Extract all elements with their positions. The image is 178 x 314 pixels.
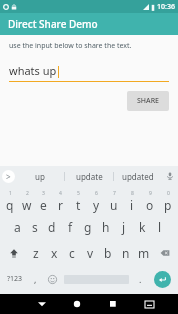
button[interactable]: Space [61, 266, 132, 292]
button[interactable]: k [133, 214, 151, 240]
staticText: q [6, 197, 14, 213]
button[interactable]: l [151, 214, 169, 240]
button[interactable]: b [99, 240, 117, 266]
staticText: k [139, 219, 146, 235]
staticText: s [32, 219, 38, 235]
staticText: h [102, 219, 110, 235]
button[interactable]: Enter [149, 266, 176, 292]
button[interactable]: d [43, 214, 61, 240]
button[interactable]: Recents [95, 294, 131, 314]
staticText: n [122, 245, 130, 261]
button[interactable]: 5 [69, 188, 87, 214]
staticText: 9 [149, 190, 152, 197]
button[interactable]: . [132, 266, 149, 292]
staticText: r [58, 197, 63, 213]
staticText: f [68, 219, 73, 235]
staticText: m [138, 245, 150, 261]
button[interactable]: v [81, 240, 99, 266]
button[interactable]: Switch keyboard [131, 294, 167, 314]
button[interactable]: m [135, 240, 153, 266]
staticText: o [146, 197, 154, 213]
button[interactable]: h [97, 214, 115, 240]
staticText: Direct Share Demo [8, 17, 98, 31]
staticText: 4 [59, 190, 62, 197]
staticText: i [130, 197, 134, 213]
staticText: y [93, 197, 100, 213]
staticText: 10:36 [157, 2, 175, 12]
staticText: p [164, 197, 172, 213]
button[interactable]: 6 [87, 188, 105, 214]
button[interactable]: n [117, 240, 135, 266]
button[interactable]: Hide keyboard [24, 294, 59, 314]
staticText: b [104, 245, 112, 261]
button[interactable]: SHARE [127, 91, 169, 111]
button[interactable]: Voice input [162, 166, 178, 186]
staticText: 2 [26, 190, 29, 197]
button[interactable]: f [61, 214, 79, 240]
button[interactable]: 2 [18, 188, 35, 214]
button[interactable]: 3 [35, 188, 52, 214]
staticText: updated [122, 171, 154, 182]
staticText: v [87, 245, 94, 261]
button[interactable]: 9 [141, 188, 159, 214]
staticText: u [110, 197, 118, 213]
staticText: whats up [9, 63, 57, 78]
button[interactable]: up [16, 166, 64, 186]
staticText: 7 [113, 190, 116, 197]
staticText: ?123 [7, 274, 23, 284]
button[interactable]: s [26, 214, 43, 240]
button[interactable]: Home [59, 294, 95, 314]
button[interactable]: c [63, 240, 81, 266]
button[interactable]: j [115, 214, 133, 240]
staticText: l [158, 219, 162, 235]
staticText: SHARE [137, 96, 159, 106]
button[interactable]: x [45, 240, 63, 266]
staticText: w [22, 197, 32, 213]
button[interactable]: 8 [123, 188, 141, 214]
button[interactable]: updated [114, 166, 162, 186]
button[interactable]: 0 [159, 188, 177, 214]
staticText: d [48, 219, 56, 235]
staticText: g [84, 219, 92, 235]
staticText: j [122, 219, 126, 235]
staticText: x [51, 245, 58, 261]
button[interactable]: Backspace [153, 240, 177, 266]
staticText: a [14, 219, 21, 235]
button[interactable]: g [79, 214, 97, 240]
button[interactable]: Shift [1, 240, 26, 266]
staticText: use the input below to share the text. [9, 41, 132, 51]
staticText: . [139, 273, 142, 285]
button[interactable]: More suggestions [0, 166, 16, 186]
staticText: 3 [42, 190, 45, 197]
staticText: > [6, 171, 11, 182]
button[interactable]: z [26, 240, 45, 266]
staticText: 5 [77, 190, 80, 197]
staticText: 8 [131, 190, 134, 197]
staticText: e [40, 197, 47, 213]
button[interactable]: ?123 [2, 266, 27, 292]
staticText: z [33, 245, 39, 261]
staticText: 6 [95, 190, 98, 197]
staticText: 0 [167, 190, 170, 197]
staticText: t [76, 197, 81, 213]
button[interactable]: a [9, 214, 26, 240]
button[interactable]: whats up [9, 63, 169, 82]
staticText: update [76, 171, 103, 182]
button[interactable]: update [65, 166, 113, 186]
button[interactable]: 7 [105, 188, 123, 214]
staticText: c [69, 245, 75, 261]
button[interactable]: 4 [52, 188, 69, 214]
button[interactable]: , [27, 266, 44, 292]
staticText: 1 [9, 190, 12, 197]
staticText: up [35, 171, 45, 182]
button[interactable]: 1 [1, 188, 18, 214]
staticText: , [34, 273, 37, 285]
button[interactable]: Emoji [44, 266, 61, 292]
